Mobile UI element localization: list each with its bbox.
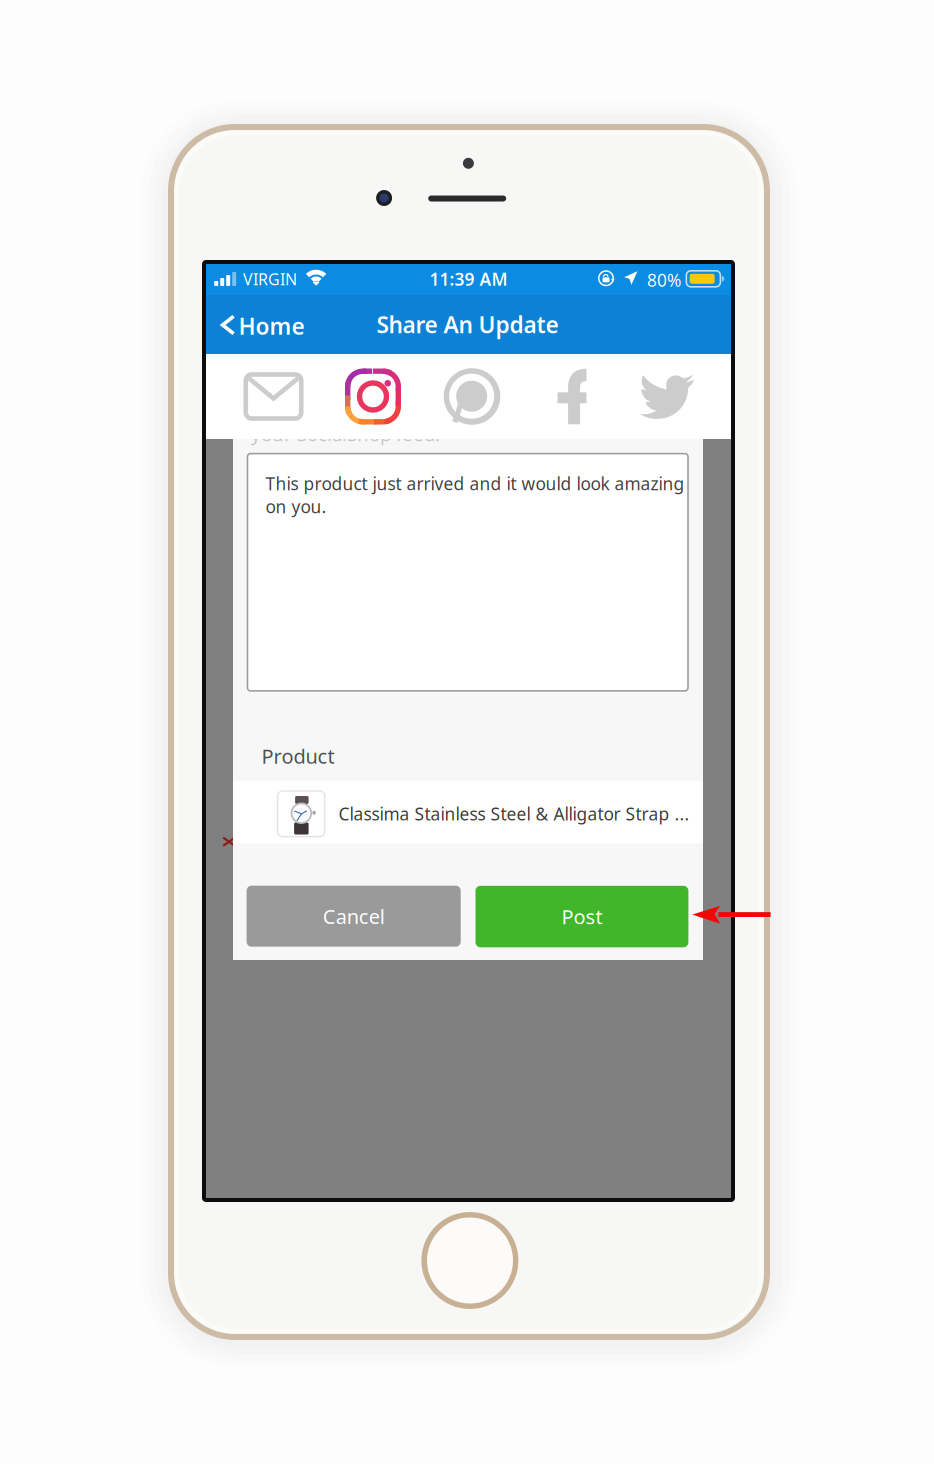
- staticText: This product just arrived and it would l…: [265, 472, 684, 518]
- staticText: Home: [239, 311, 305, 341]
- staticText: 80%: [647, 268, 681, 291]
- button[interactable]: Share by Email: [223, 354, 323, 439]
- button[interactable]: Share on Instagram: [323, 354, 423, 439]
- staticText: Product: [261, 743, 334, 769]
- button[interactable]: Post: [475, 886, 688, 947]
- staticText: Cancel: [323, 903, 385, 929]
- staticText: your SocialShop feed.: [251, 422, 440, 446]
- button[interactable]: Share on Twitter: [617, 354, 717, 439]
- staticText: 11:39 AM: [429, 267, 507, 290]
- staticText: VIRGIN: [243, 268, 297, 290]
- button[interactable]: Share on Pinterest: [422, 354, 522, 439]
- button[interactable]: Classima Stainless Steel & Alligator Str…: [233, 781, 703, 843]
- button[interactable]: Home: [214, 295, 314, 354]
- staticText: Share An Update: [376, 309, 558, 339]
- button[interactable]: Cancel: [247, 886, 461, 947]
- button[interactable]: Share on Facebook: [522, 354, 622, 439]
- staticText: Post: [561, 903, 602, 930]
- staticText: Classima Stainless Steel & Alligator Str…: [338, 802, 689, 825]
